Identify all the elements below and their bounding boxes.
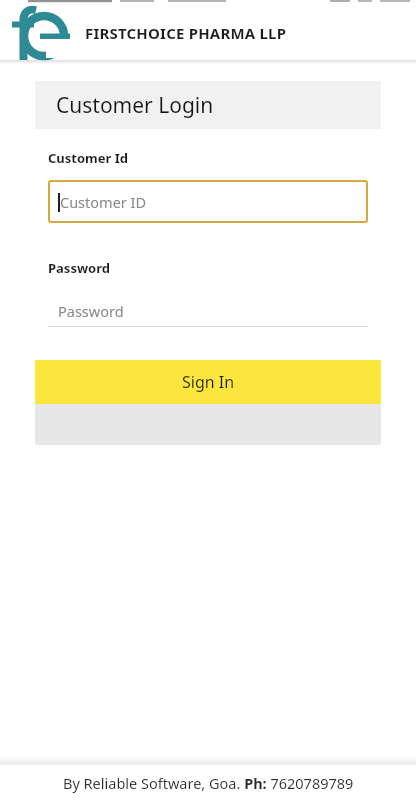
staticText: By Reliable Software, Goa. Ph: 762078978…: [63, 773, 354, 793]
staticText: FIRSTCHOICE PHARMA LLP: [85, 23, 287, 43]
button[interactable]: Password: [48, 295, 368, 327]
staticText: Customer Login: [56, 91, 214, 120]
button[interactable]: Sign In: [35, 360, 381, 404]
staticText: Customer ID: [60, 192, 147, 212]
staticText: Sign In: [182, 371, 235, 393]
other: FirstChoice Pharma logo: [8, 2, 72, 64]
button[interactable]: Customer ID: [48, 180, 368, 223]
staticText: Password: [58, 301, 124, 321]
staticText: Password: [48, 259, 110, 277]
staticText: Customer Id: [48, 149, 128, 167]
